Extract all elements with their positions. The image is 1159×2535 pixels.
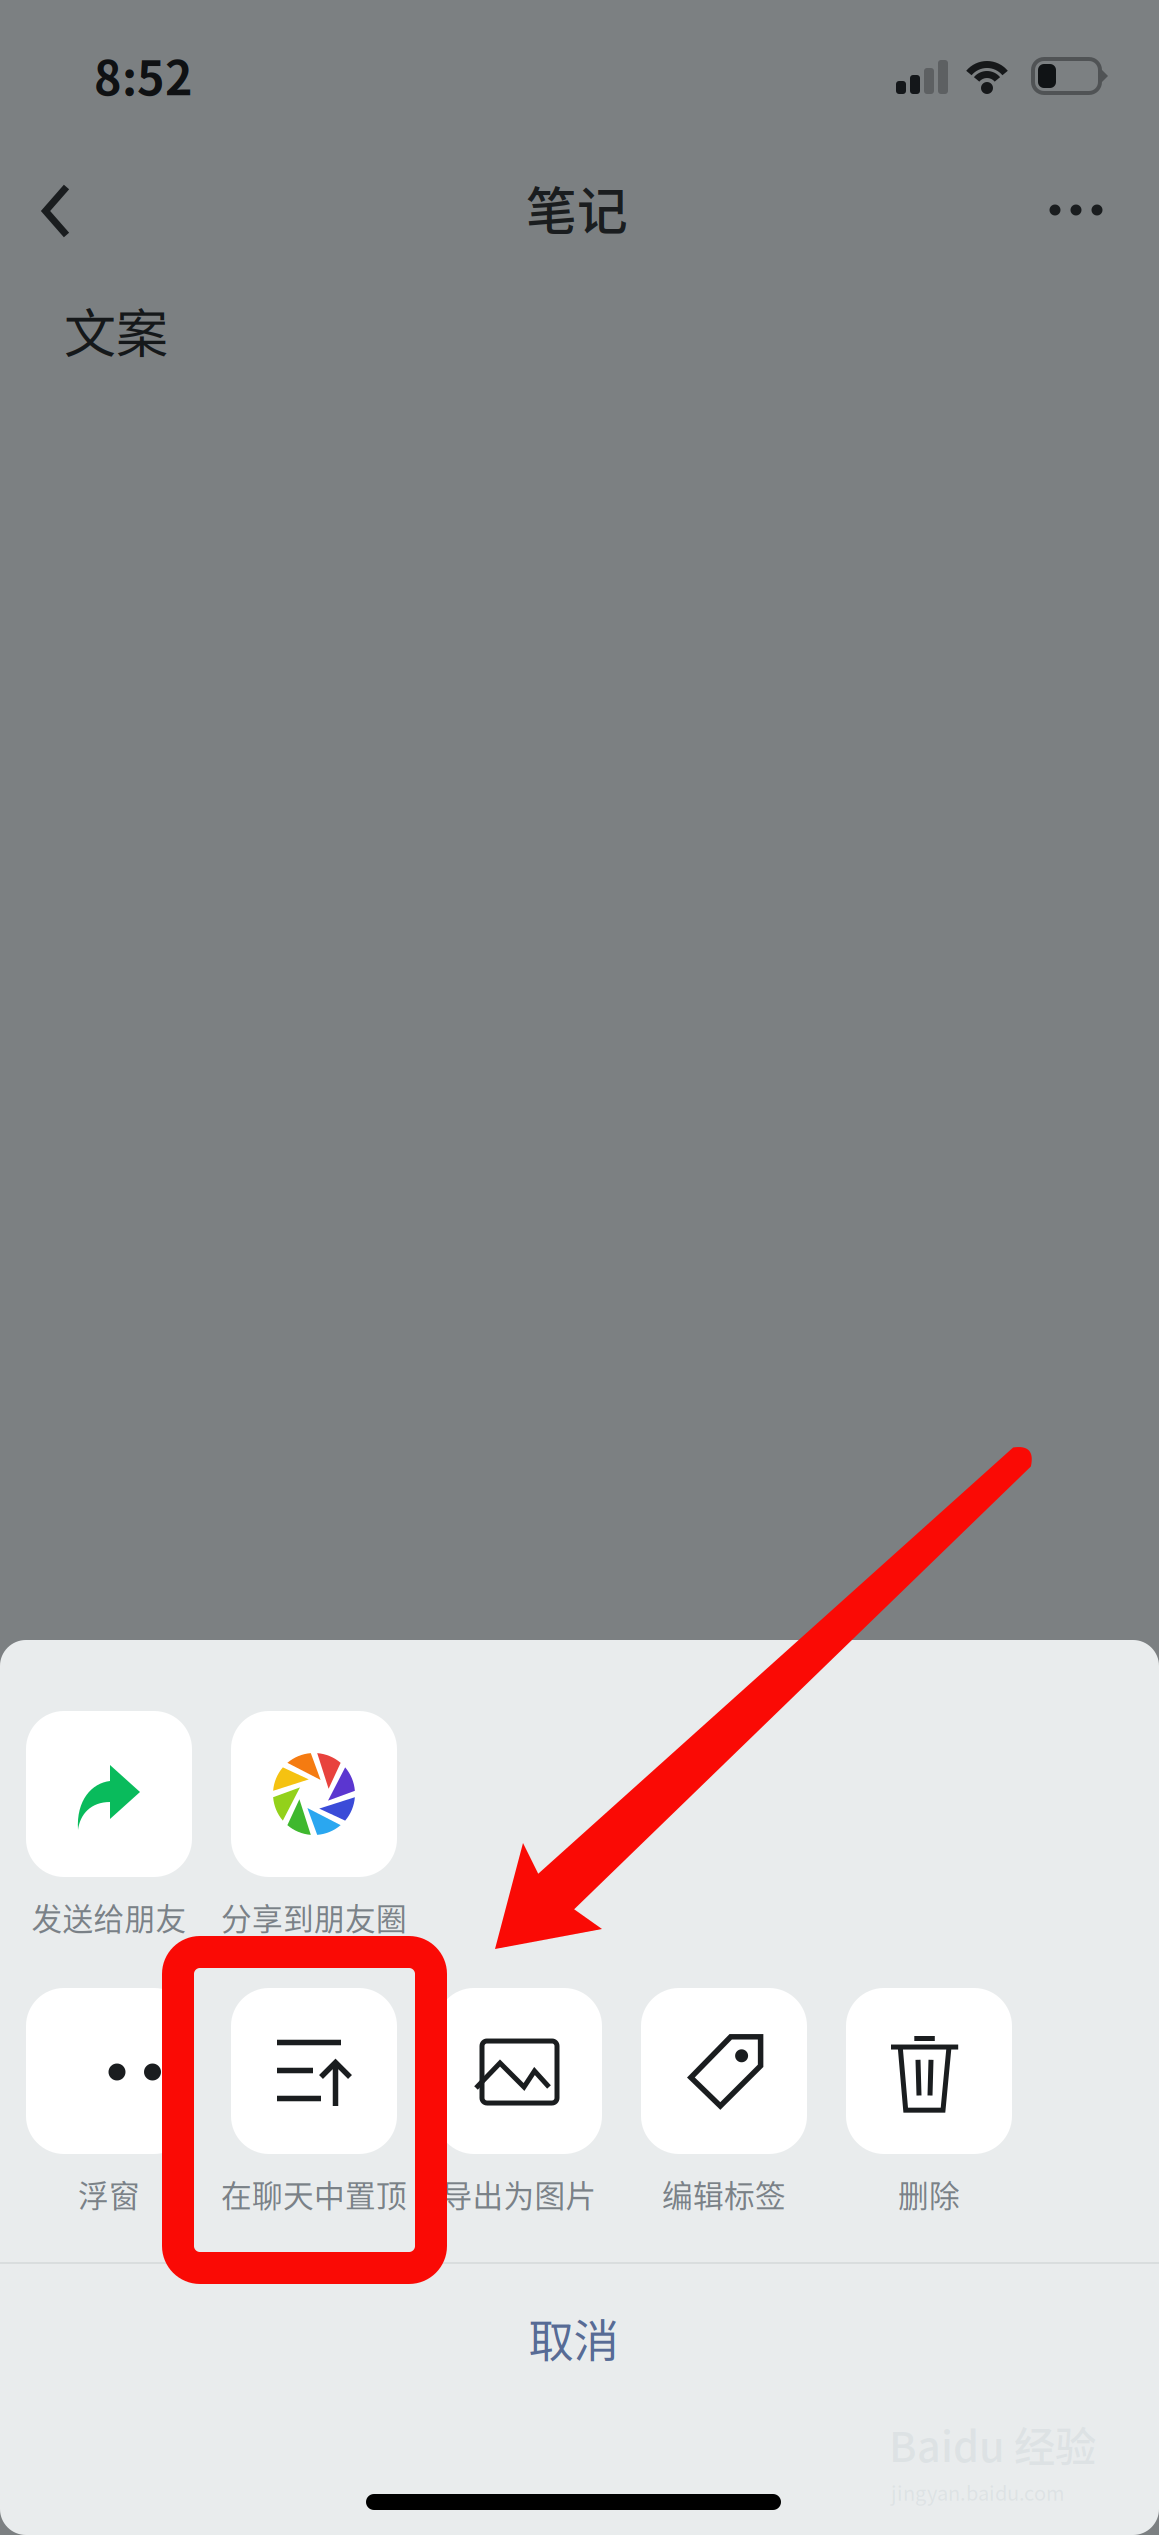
staticText: 取消 bbox=[528, 2305, 618, 2371]
staticText: 编辑标签 bbox=[662, 2172, 786, 2216]
button[interactable]: 在聊天中置顶 bbox=[231, 1988, 397, 2216]
staticText: 浮窗 bbox=[78, 2172, 140, 2216]
staticText: Baidu 经验 bbox=[889, 2414, 1096, 2474]
staticText: 分享到朋友圈 bbox=[221, 1895, 407, 1939]
button[interactable]: 浮窗 bbox=[26, 1988, 192, 2216]
button[interactable]: 删除 bbox=[846, 1988, 1012, 2216]
staticText: 发送给朋友 bbox=[31, 1895, 186, 1939]
staticText: 文案 bbox=[64, 292, 168, 368]
staticText: 在聊天中置顶 bbox=[221, 2172, 407, 2216]
button[interactable]: 返回 bbox=[42, 185, 69, 237]
button[interactable]: 导出为图片 bbox=[436, 1988, 602, 2216]
button[interactable]: 发送给朋友 bbox=[26, 1711, 192, 1939]
button[interactable]: 分享到朋友圈 bbox=[231, 1711, 397, 1939]
button[interactable]: 更多 bbox=[1049, 204, 1102, 216]
button[interactable]: 编辑标签 bbox=[641, 1988, 807, 2216]
staticText: jingyan.baidu.com bbox=[891, 2477, 1065, 2506]
staticText: 导出为图片 bbox=[441, 2172, 596, 2216]
staticText: 笔记 bbox=[526, 171, 628, 245]
button[interactable]: 取消 bbox=[0, 2264, 1159, 2430]
staticText: 删除 bbox=[898, 2172, 960, 2216]
staticText: 8:52 bbox=[94, 41, 193, 109]
